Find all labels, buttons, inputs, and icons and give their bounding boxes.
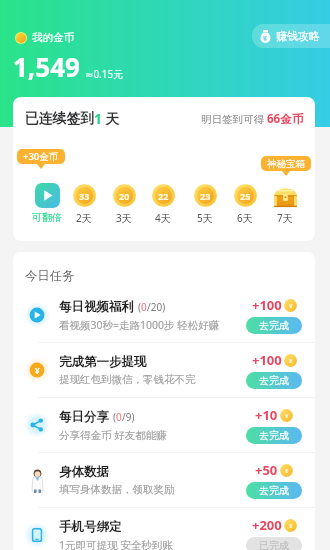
staticText: 去完成 <box>259 374 289 387</box>
staticText: 可翻倍 <box>32 211 62 224</box>
staticText: 去完成 <box>259 429 289 442</box>
staticText: 每日分享 <box>59 409 109 425</box>
staticText: 神秘宝箱 <box>267 158 305 170</box>
staticText: +200 <box>252 516 282 534</box>
staticText: +100 <box>252 351 282 369</box>
staticText: ¥ <box>285 467 289 475</box>
staticText: 22 <box>158 190 169 202</box>
staticText: 4天 <box>155 211 171 225</box>
staticText: ¥ <box>285 412 289 420</box>
button[interactable]: 每日分享 <box>13 398 315 452</box>
staticText: 0 <box>141 300 147 314</box>
button[interactable]: 22 <box>146 182 180 225</box>
staticText: 明日签到可得 <box>201 112 267 126</box>
staticText: 身体数据 <box>59 464 109 480</box>
button[interactable]: 7天 <box>268 182 302 225</box>
button[interactable]: 23 <box>188 182 222 225</box>
staticText: ¥ <box>289 302 293 310</box>
staticText: /20) <box>147 300 166 314</box>
staticText: +50 <box>255 461 278 479</box>
staticText: ≈0.15元 <box>85 67 124 81</box>
staticText: 手机号绑定 <box>59 519 122 535</box>
staticText: 5天 <box>197 211 213 225</box>
button[interactable]: 20 <box>107 182 141 225</box>
staticText: 33 <box>79 190 90 202</box>
staticText: ( <box>138 300 141 314</box>
staticText: 看视频30秒=走路1000步 轻松好赚 <box>59 318 220 332</box>
staticText: 我的金币 <box>32 31 74 44</box>
staticText: +10 <box>255 406 278 424</box>
staticText: +100 <box>252 296 282 314</box>
button[interactable]: ¥ <box>13 343 315 397</box>
staticText: 分享得金币 好友都能赚 <box>59 428 167 442</box>
staticText: 23 <box>200 190 211 202</box>
staticText: 天 <box>102 109 120 128</box>
button[interactable]: 身体数据 <box>13 453 315 507</box>
staticText: ¥ <box>289 522 293 530</box>
button[interactable]: 手机号绑定 <box>13 508 315 550</box>
staticText: 去完成 <box>259 484 289 497</box>
staticText: ¥ <box>263 34 268 44</box>
button[interactable]: 去完成 <box>246 427 302 444</box>
staticText: 赚钱攻略 <box>276 29 320 43</box>
staticText: 6天 <box>237 211 253 225</box>
button[interactable]: 每日视频福利 <box>13 288 315 342</box>
staticText: 已完成 <box>259 539 289 550</box>
staticText: 20 <box>119 190 130 202</box>
button[interactable]: 去完成 <box>246 317 302 334</box>
button[interactable]: ¥ <box>252 24 330 48</box>
staticText: ¥ <box>35 365 40 376</box>
button[interactable]: 可翻倍 <box>30 182 64 224</box>
staticText: 7天 <box>277 211 293 225</box>
staticText: +30金币 <box>23 150 59 163</box>
staticText: 1元即可提现 安全秒到账 <box>59 538 173 550</box>
staticText: 0 <box>116 410 122 424</box>
staticText: 66金币 <box>267 111 304 127</box>
button[interactable]: 去完成 <box>246 482 302 499</box>
button[interactable]: 33 <box>67 182 101 225</box>
staticText: 每日视频福利 <box>59 299 134 315</box>
staticText: 去完成 <box>259 319 289 332</box>
staticText: 3天 <box>116 211 132 225</box>
staticText: 1 <box>94 109 102 128</box>
staticText: /9) <box>122 410 135 424</box>
staticText: ¥ <box>289 357 293 365</box>
staticText: 25 <box>240 190 251 202</box>
staticText: 已连续签到 <box>25 110 94 127</box>
button[interactable]: 25 <box>228 182 262 225</box>
staticText: 填写身体数据，领取奖励 <box>59 483 175 496</box>
staticText: 1,549 <box>13 49 80 84</box>
staticText: 完成第一步提现 <box>59 354 147 370</box>
staticText: 提现红包到微信，零钱花不完 <box>59 373 196 386</box>
staticText: 2天 <box>76 211 92 225</box>
button[interactable]: 去完成 <box>246 372 302 389</box>
staticText: ( <box>113 410 116 424</box>
staticText: 今日任务 <box>25 268 75 284</box>
button[interactable]: 已完成 <box>246 537 302 550</box>
